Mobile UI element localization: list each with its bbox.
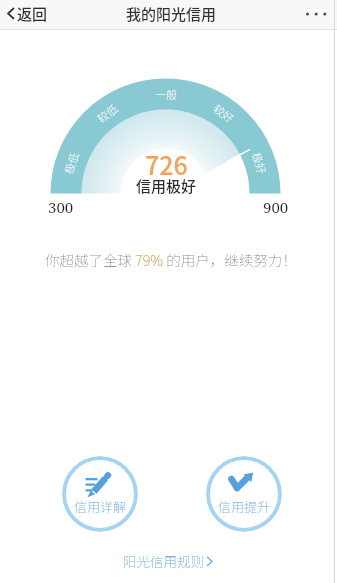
staticText: 900 [263,197,289,217]
button[interactable]: 阳光信用规则 [123,551,215,571]
button[interactable]: 信用详解 [62,456,138,532]
staticText: 726 [145,146,188,182]
button[interactable]: 返回 [0,0,40,29]
staticText: 300 [48,197,74,217]
staticText: 信用详解 [74,497,127,516]
staticText: 较低 [93,100,121,126]
staticText: 你超越了全球 79% 的用户，继续努力！ [45,249,297,270]
staticText: 一般 [155,86,177,102]
button[interactable]: 信用提升 [206,456,282,532]
staticText: 极低 [60,150,82,176]
staticText: 极好 [249,150,271,176]
staticText: 阳光信用规则 [123,551,204,571]
staticText: 信用提升 [218,497,271,516]
button[interactable] [305,10,327,18]
staticText: 较好 [210,100,238,126]
staticText: 返回 [17,3,48,25]
staticText: 我的阳光信用 [126,3,217,25]
staticText: 信用极好 [136,175,197,197]
